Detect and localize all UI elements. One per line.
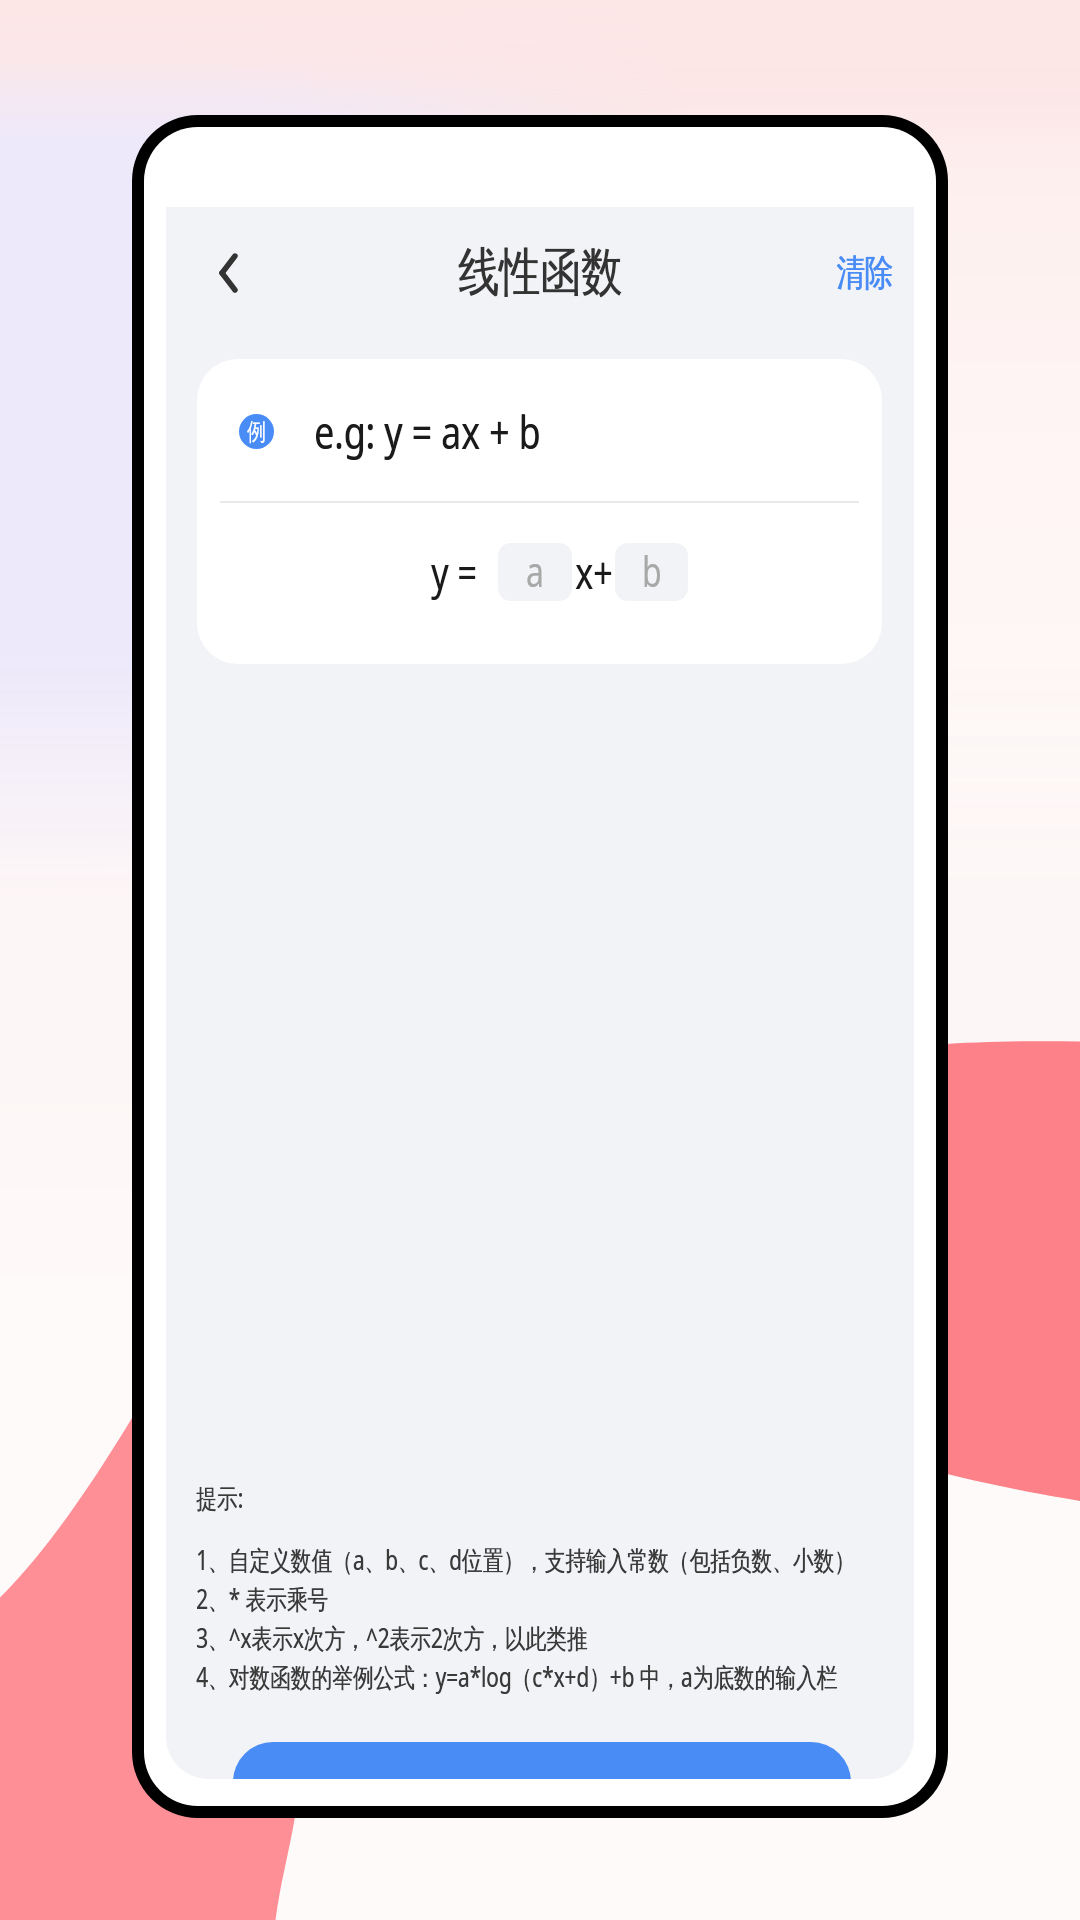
staticText: 清除 [837,250,894,296]
staticText: 4、对数函数的举例公式：y=a*log（c*x+d）+b 中，a为底数的输入栏 [196,1659,838,1695]
staticText: 例 [247,417,266,447]
button[interactable]: Back [175,229,263,317]
button[interactable]: 清除 [815,231,914,315]
staticText: y = [431,543,477,601]
staticText: e.g: y = ax + b [314,400,541,462]
staticText: 3、^x表示x次方，^2表示2次方，以此类推 [196,1620,588,1656]
staticText: 2、* 表示乘号 [196,1581,329,1617]
staticText: 线性函数 [458,240,622,306]
staticText: x+ [575,543,613,601]
staticText: 3、^x表示x次方，^2表示2次方，以此类推 [196,1620,588,1656]
button[interactable] [233,1742,851,1779]
staticText: b [642,544,662,600]
staticText: 提示: [196,1480,243,1516]
staticText: 清除 [836,250,893,296]
staticText: 1、自定义数值（a、b、c、d位置），支持输入常数（包括负数、小数） [196,1542,855,1578]
button[interactable]: a [498,543,572,601]
staticText: x+ [576,543,614,601]
staticText: 1、自定义数值（a、b、c、d位置），支持输入常数（包括负数、小数） [196,1542,855,1578]
staticText: e.g: y = ax + b [315,400,542,462]
staticText: 2、* 表示乘号 [196,1581,329,1617]
staticText: a [526,544,544,600]
button[interactable]: b [615,543,688,601]
staticText: y = [432,543,478,601]
staticText: 提示: [196,1480,243,1516]
staticText: 4、对数函数的举例公式：y=a*log（c*x+d）+b 中，a为底数的输入栏 [196,1659,838,1695]
staticText: 线性函数 [459,240,623,306]
